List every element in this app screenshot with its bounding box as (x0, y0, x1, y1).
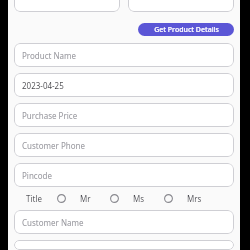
button[interactable]: Select title option (161, 191, 175, 205)
staticText: Title (26, 193, 42, 204)
button[interactable]: Pincode (14, 163, 234, 187)
staticText: 2023-04-25 (22, 80, 64, 91)
staticText: Mr (80, 193, 91, 204)
button[interactable] (128, 0, 234, 12)
staticText: Customer Name (22, 217, 84, 228)
button[interactable]: Purchase Price (14, 103, 234, 127)
button[interactable]: 2023-04-25 (14, 73, 234, 97)
button[interactable]: Get Product Details (138, 23, 234, 36)
button[interactable]: Customer Name (14, 210, 234, 234)
button[interactable]: Product Name (14, 43, 234, 67)
staticText: Purchase Price (22, 110, 78, 121)
staticText: Get Product Details (154, 25, 219, 35)
button[interactable]: Select title option (107, 191, 121, 205)
staticText: Ms (133, 193, 145, 204)
staticText: Mrs (187, 193, 202, 204)
button[interactable] (14, 0, 120, 12)
staticText: Customer Phone (22, 140, 86, 151)
staticText: Pincode (22, 170, 52, 181)
button[interactable]: Customer Phone (14, 133, 234, 157)
staticText: Product Name (22, 50, 77, 61)
button[interactable]: Select title option (54, 191, 68, 205)
button[interactable] (14, 240, 234, 250)
